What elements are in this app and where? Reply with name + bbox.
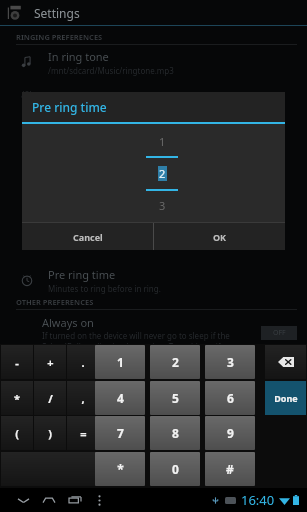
staticText: In ring duration <box>48 89 130 104</box>
staticText: /mnt/sdcard/Music/ringtone.mp3 <box>48 65 174 76</box>
button[interactable]: 2 <box>150 345 200 379</box>
button[interactable]: Backspace <box>265 345 306 379</box>
button[interactable]: ) <box>34 416 66 450</box>
button[interactable]: 4 <box>95 381 145 415</box>
staticText: , <box>81 391 85 406</box>
button[interactable]: 0 <box>150 452 200 486</box>
button[interactable]: Home <box>36 488 62 512</box>
button[interactable]: Cancel <box>22 223 153 250</box>
staticText: 8 <box>172 425 179 441</box>
button[interactable]: OFF <box>261 326 297 340</box>
button[interactable]: + <box>34 345 66 379</box>
staticText: + <box>47 355 54 370</box>
button[interactable]: More options <box>88 489 110 511</box>
button[interactable]: . <box>67 345 99 379</box>
button[interactable]: Always on <box>0 310 307 356</box>
staticText: 5 <box>172 390 179 406</box>
staticText: Minutes to ring before in ring. <box>48 283 161 294</box>
staticText: OFF <box>273 328 286 338</box>
button[interactable]: # <box>205 452 255 486</box>
button[interactable]: In ring tone <box>0 45 307 79</box>
staticText: Cancel <box>73 231 103 243</box>
staticText: OTHER PREFERENCES <box>16 297 94 307</box>
button[interactable]: * <box>1 381 33 415</box>
staticText: / <box>48 391 53 406</box>
staticText: Settings <box>34 5 80 21</box>
staticText: 0 <box>172 461 179 477</box>
staticText: ( <box>15 426 19 441</box>
button[interactable]: - <box>1 345 33 379</box>
staticText: RINGING PREFERENCES <box>16 32 103 42</box>
button[interactable]: 9 <box>205 416 255 450</box>
staticText: 6 <box>227 390 234 406</box>
staticText: Pre ring time <box>48 267 116 282</box>
staticText: Pre ring time <box>32 99 107 115</box>
button[interactable]: 5 <box>150 381 200 415</box>
staticText: 1 <box>159 134 166 149</box>
button[interactable]: Done <box>265 381 306 415</box>
staticText: - <box>15 355 19 370</box>
button[interactable]: Recents <box>62 488 88 512</box>
button[interactable]: OK <box>154 223 285 250</box>
button[interactable]: 7 <box>95 416 145 450</box>
button[interactable]: * <box>95 452 145 486</box>
button[interactable]: = <box>67 416 99 450</box>
staticText: SchoolBell application is running. Turn … <box>42 341 240 352</box>
button[interactable] <box>1 452 99 486</box>
staticText: 2 <box>172 354 179 370</box>
button[interactable]: 8 <box>150 416 200 450</box>
button[interactable]: ( <box>1 416 33 450</box>
staticText: Always on <box>42 315 94 330</box>
staticText: 2 <box>159 166 166 181</box>
button[interactable]: / <box>34 381 66 415</box>
button[interactable]: In ring duration <box>0 79 307 113</box>
staticText: 7 <box>117 425 124 441</box>
staticText: . <box>81 355 85 370</box>
staticText: # <box>226 461 234 477</box>
staticText: OK <box>213 231 227 243</box>
staticText: 4 <box>117 390 124 406</box>
button[interactable]: Pre ring time <box>0 263 307 297</box>
staticText: Done <box>274 392 298 404</box>
staticText: 1 <box>117 354 124 370</box>
staticText: In ring tone <box>48 49 109 64</box>
staticText: If turned on the device will never go to… <box>42 330 230 341</box>
staticText: = <box>80 426 87 441</box>
staticText: 3 <box>159 198 166 213</box>
staticText: * <box>14 391 20 406</box>
staticText: 16:40 <box>241 491 275 509</box>
button[interactable]: 1 <box>95 345 145 379</box>
button[interactable]: , <box>67 381 99 415</box>
button[interactable]: 3 <box>205 345 255 379</box>
staticText: 9 <box>227 425 234 441</box>
staticText: ) <box>48 426 52 441</box>
button[interactable]: 6 <box>205 381 255 415</box>
staticText: * <box>117 461 124 477</box>
button[interactable]: Back <box>10 488 36 512</box>
staticText: 3 <box>227 354 234 370</box>
